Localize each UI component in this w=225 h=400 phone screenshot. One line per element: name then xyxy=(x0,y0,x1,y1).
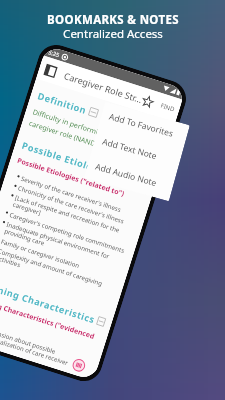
staticText: Centralized Access xyxy=(63,26,163,42)
button[interactable]: Add To Favorites xyxy=(108,111,188,143)
staticText: Inadequate physical environment for prov… xyxy=(3,220,125,272)
staticText: Caregiver's competing role commitments xyxy=(9,210,126,254)
staticText: Apprehension about possible institutiona… xyxy=(0,322,93,374)
button[interactable]: FIND xyxy=(160,102,176,114)
staticText: Defining Characteristics ("evidenced by"… xyxy=(0,294,101,353)
staticText: Possible Etiologies xyxy=(21,139,115,179)
staticText: Chronicity of the care receiver's illnes… xyxy=(17,183,125,225)
button[interactable]: Book xyxy=(42,63,59,79)
staticText: Add Text Note xyxy=(101,136,159,162)
staticText: Complexity and amount of caregiving acti… xyxy=(0,246,117,299)
staticText: 5:25 xyxy=(48,48,60,58)
button[interactable]: Add Text Note xyxy=(101,136,181,168)
staticText: Possible Etiologies ("related to") xyxy=(16,156,126,199)
staticText: Difficulty in performing caregiver role … xyxy=(28,107,108,151)
staticText: Defining Characteristics xyxy=(0,277,97,325)
staticText: Family or caregiver isolation xyxy=(0,237,81,269)
staticText: Add Audio Note xyxy=(94,161,159,189)
staticText: [Lack of respite and recreation for the … xyxy=(12,193,134,245)
staticText: Severity of the care receiver's illness xyxy=(20,174,123,213)
staticText: BOOKMARKS & NOTES xyxy=(47,12,179,28)
staticText: Definition xyxy=(36,89,89,116)
button[interactable]: Add Audio Note xyxy=(94,161,174,194)
staticText: FIND xyxy=(160,102,176,114)
staticText: Add To Favorites xyxy=(108,111,175,140)
button[interactable]: Favorite xyxy=(141,95,155,109)
staticText: Caregiver Role Str... xyxy=(63,69,144,105)
